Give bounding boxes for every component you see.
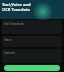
button[interactable]: Voice bbox=[2, 36, 62, 47]
button[interactable] bbox=[4, 65, 60, 71]
button[interactable]: Camera bbox=[2, 49, 62, 63]
staticText: Camera bbox=[4, 51, 15, 55]
staticText: Voice bbox=[4, 38, 12, 42]
staticText: Text,Voice and bbox=[2, 2, 31, 7]
staticText: Text Translate bbox=[4, 22, 24, 26]
staticText: OCR Translate bbox=[2, 7, 30, 12]
button[interactable]: Text Translate bbox=[2, 20, 62, 34]
